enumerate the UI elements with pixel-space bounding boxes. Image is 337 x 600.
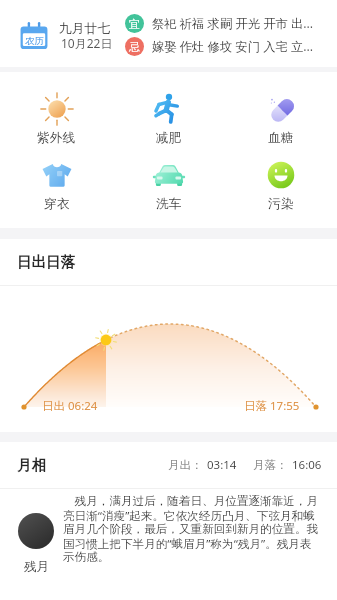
staticText: 10月22日 xyxy=(61,35,113,51)
staticText: 紫外线 xyxy=(37,130,76,146)
staticText: 减肥 xyxy=(156,130,182,146)
button[interactable]: 减肥 xyxy=(113,92,225,146)
button[interactable]: 污染 xyxy=(225,158,337,212)
staticText: 农历 xyxy=(25,35,44,47)
staticText: 忌 xyxy=(129,40,140,54)
staticText: 03:14 xyxy=(207,457,237,473)
staticText: 宜 xyxy=(129,17,140,31)
staticText: 日出日落 xyxy=(17,253,75,271)
button[interactable]: 洗车 xyxy=(113,158,225,212)
staticText: 污染 xyxy=(268,196,294,212)
staticText: 嫁娶 作灶 修坟 安门 入宅 立... xyxy=(152,38,314,55)
button[interactable] xyxy=(0,0,337,67)
staticText: 九月廿七 xyxy=(59,21,111,37)
staticText: 月落： xyxy=(253,458,288,472)
staticText: 穿衣 xyxy=(44,196,70,212)
staticText: 日落 17:55 xyxy=(244,398,300,414)
staticText: 残月，满月过后，随着日、月位置逐渐靠近，月亮日渐“消瘦”起来。它依次经历凸月、下… xyxy=(63,493,320,565)
staticText: 16:06 xyxy=(292,457,322,473)
staticText: 日出 06:24 xyxy=(42,398,98,414)
staticText: 血糖 xyxy=(268,130,294,146)
staticText: 祭祀 祈福 求嗣 开光 开市 出... xyxy=(152,15,314,32)
staticText: 月相 xyxy=(17,456,46,474)
staticText: 洗车 xyxy=(156,196,182,212)
button[interactable]: 紫外线 xyxy=(0,92,113,146)
staticText: 残月 xyxy=(24,559,49,575)
staticText: 月出： xyxy=(168,458,203,472)
button[interactable]: 穿衣 xyxy=(0,158,113,212)
button[interactable]: 血糖 xyxy=(225,92,337,146)
